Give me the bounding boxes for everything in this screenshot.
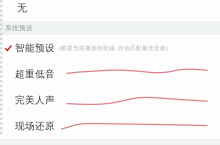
button[interactable]: 无 <box>0 0 220 21</box>
staticText: 无 <box>17 2 27 14</box>
button[interactable]: 超重低音 <box>0 61 220 87</box>
staticText: (根据当前播放的歌曲, 自动匹配最佳音效) <box>59 44 168 52</box>
button[interactable]: 完美人声 <box>0 87 220 113</box>
staticText: 超重低音 <box>15 68 55 80</box>
button[interactable]: 现场还原 <box>0 113 220 139</box>
staticText: 现场还原 <box>15 120 55 132</box>
staticText: 完美人声 <box>15 94 55 106</box>
staticText: 智能预设 <box>15 42 55 54</box>
button[interactable]: 智能预设 <box>0 35 220 61</box>
staticText: 系统预设 <box>5 24 33 32</box>
